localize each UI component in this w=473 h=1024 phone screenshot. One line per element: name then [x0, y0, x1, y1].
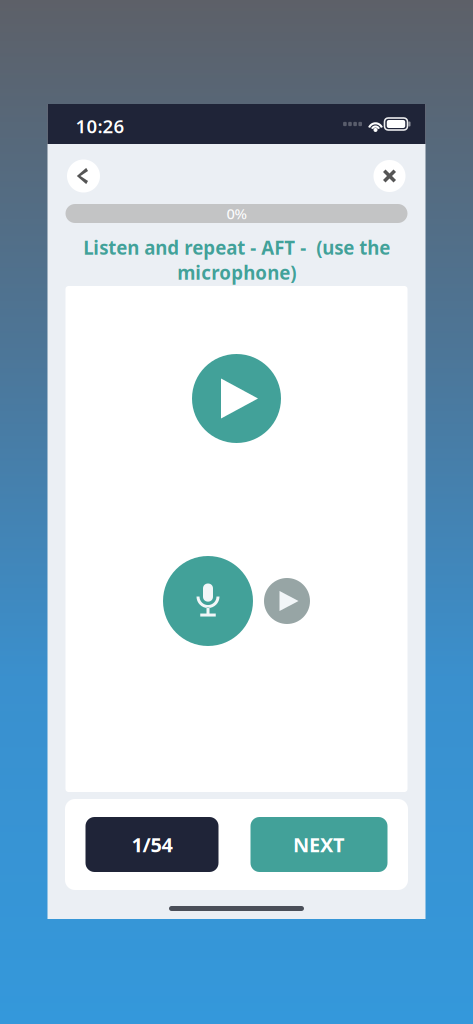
- staticText: 10:26: [75, 114, 124, 138]
- button[interactable]: Record with microphone: [163, 556, 253, 646]
- staticText: NEXT: [293, 831, 345, 858]
- staticText: 1/54: [131, 831, 172, 858]
- staticText: Listen and repeat - AFT - (use the micro…: [83, 235, 390, 285]
- button[interactable]: Back: [61, 154, 105, 198]
- button[interactable]: Play audio: [192, 354, 281, 443]
- button[interactable]: Play recording: [264, 578, 310, 624]
- button[interactable]: 1/54: [85, 817, 218, 872]
- staticText: 0%: [226, 204, 246, 223]
- button[interactable]: Close: [367, 154, 411, 198]
- button[interactable]: NEXT: [250, 817, 387, 872]
